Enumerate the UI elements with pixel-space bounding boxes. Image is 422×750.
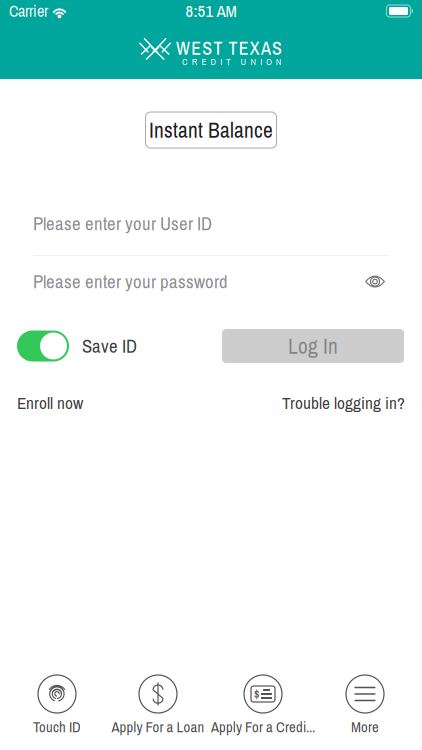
button[interactable]: Show password bbox=[361, 271, 389, 293]
button[interactable]: Enroll now bbox=[17, 391, 83, 414]
staticText: WEST TEXAS bbox=[176, 36, 282, 60]
button[interactable]: Touch ID bbox=[0, 675, 114, 737]
staticText: Enroll now bbox=[17, 391, 83, 414]
button[interactable]: Save ID bbox=[17, 330, 137, 361]
button[interactable]: $ bbox=[202, 675, 324, 737]
staticText: Instant Balance bbox=[149, 116, 273, 144]
button[interactable]: More bbox=[324, 675, 406, 737]
button[interactable]: Apply For a Loan bbox=[114, 675, 202, 737]
button[interactable]: Trouble logging in? bbox=[282, 391, 405, 414]
staticText: Please enter your password bbox=[33, 269, 228, 294]
staticText: Save ID bbox=[82, 333, 137, 358]
staticText: Log In bbox=[288, 332, 338, 360]
staticText: Apply For a Credi... bbox=[211, 717, 315, 737]
staticText: Trouble logging in? bbox=[282, 391, 405, 414]
staticText: $ bbox=[254, 686, 259, 702]
button[interactable]: Instant Balance bbox=[145, 112, 276, 148]
staticText: Carrier bbox=[9, 0, 48, 22]
staticText: More bbox=[351, 717, 379, 737]
staticText: CREDIT UNION bbox=[182, 55, 282, 68]
staticText: Apply For a Loan bbox=[111, 717, 204, 737]
staticText: Please enter your User ID bbox=[33, 211, 212, 236]
staticText: Touch ID bbox=[33, 717, 81, 737]
staticText: 8:51 AM bbox=[185, 0, 236, 22]
button[interactable]: Log In bbox=[222, 329, 404, 363]
